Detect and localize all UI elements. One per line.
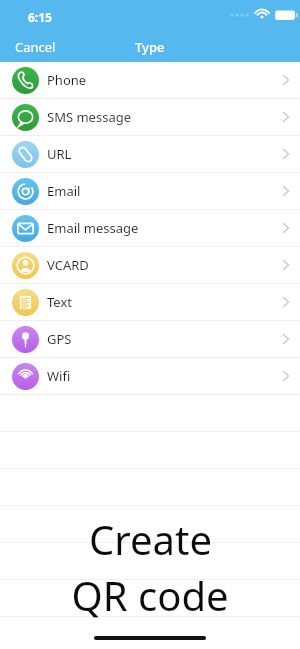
staticText: Create	[89, 512, 212, 566]
staticText: Wifi	[47, 367, 71, 385]
button[interactable]: GPS	[0, 321, 300, 357]
staticText: SMS message	[47, 108, 132, 126]
staticText: QR code	[71, 568, 229, 622]
button[interactable]: Wifi	[0, 358, 300, 394]
staticText: 6:15	[28, 9, 52, 25]
button[interactable]: SMS message	[0, 99, 300, 135]
staticText: Cancel	[15, 38, 56, 56]
staticText: GPS	[47, 330, 72, 348]
button[interactable]: VCARD	[0, 247, 300, 283]
staticText: URL	[47, 145, 72, 163]
button[interactable]: Text	[0, 284, 300, 320]
button[interactable]: Phone	[0, 62, 300, 98]
button[interactable]: Email message	[0, 210, 300, 246]
button[interactable]: Cancel	[8, 36, 63, 58]
staticText: Phone	[47, 71, 87, 89]
staticText: Text	[47, 293, 72, 311]
button[interactable]: Email	[0, 173, 300, 209]
staticText: Email	[47, 182, 81, 200]
staticText: Type	[135, 38, 165, 56]
staticText: Email message	[47, 219, 139, 237]
staticText: VCARD	[47, 256, 89, 274]
button[interactable]: URL	[0, 136, 300, 172]
